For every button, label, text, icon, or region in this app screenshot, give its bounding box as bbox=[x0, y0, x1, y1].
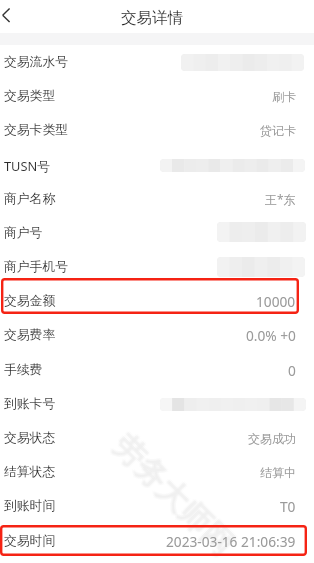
button[interactable]: 商户号 bbox=[0, 216, 314, 250]
staticText: 0.0% +0 bbox=[246, 326, 296, 345]
staticText: 刷卡 bbox=[272, 89, 296, 104]
button[interactable]: 交易类型 bbox=[0, 79, 314, 113]
staticText: 交易类型 bbox=[4, 88, 56, 104]
staticText: 交易状态 bbox=[4, 430, 56, 446]
staticText: 手续费 bbox=[4, 362, 43, 378]
button[interactable]: 结算状态 bbox=[0, 455, 314, 489]
button[interactable]: TUSN号 bbox=[0, 148, 314, 182]
staticText: 劳务大师网 bbox=[105, 427, 242, 563]
staticText: 交易费率 bbox=[4, 327, 56, 343]
staticText: 商户手机号 bbox=[4, 259, 68, 275]
staticText: 交易时间 bbox=[4, 533, 56, 549]
staticText: 结算中 bbox=[260, 465, 296, 480]
staticText: 交易详情 bbox=[121, 8, 184, 28]
staticText: 王*东 bbox=[265, 191, 296, 207]
button[interactable]: 商户手机号 bbox=[0, 250, 314, 284]
staticText: 交易成功 bbox=[248, 431, 296, 446]
button[interactable]: 交易卡类型 bbox=[0, 113, 314, 147]
button[interactable]: 到账卡号 bbox=[0, 387, 314, 421]
staticText: T0 bbox=[280, 497, 296, 516]
staticText: 交易金额 bbox=[4, 293, 56, 309]
staticText: 商户名称 bbox=[4, 191, 56, 207]
button[interactable]: 手续费 bbox=[0, 353, 314, 387]
staticText: 0 bbox=[288, 361, 296, 380]
button[interactable]: 交易金额 bbox=[0, 284, 314, 318]
button[interactable]: 交易费率 bbox=[0, 318, 314, 352]
button[interactable]: 交易状态 bbox=[0, 421, 314, 455]
staticText: 劳务大师网 bbox=[106, 426, 243, 563]
button[interactable]: 商户名称 bbox=[0, 182, 314, 216]
button[interactable]: Back bbox=[0, 0, 30, 30]
staticText: 劳务大师网 bbox=[106, 428, 243, 563]
staticText: 到账时间 bbox=[4, 498, 56, 514]
staticText: 劳务大师网 bbox=[104, 428, 241, 563]
staticText: 交易卡类型 bbox=[4, 122, 68, 138]
button[interactable]: 交易流水号 bbox=[0, 45, 314, 79]
button[interactable]: 交易时间 bbox=[0, 524, 314, 558]
staticText: 到账卡号 bbox=[4, 396, 56, 412]
staticText: 10000 bbox=[256, 292, 296, 311]
staticText: 商户号 bbox=[4, 225, 43, 241]
staticText: TUSN号 bbox=[4, 157, 51, 174]
staticText: 交易流水号 bbox=[4, 54, 68, 70]
staticText: 贷记卡 bbox=[260, 123, 296, 138]
staticText: 2023-03-16 21:06:39 bbox=[166, 532, 296, 551]
staticText: 劳务大师网 bbox=[104, 426, 241, 563]
staticText: 结算状态 bbox=[4, 464, 56, 480]
button[interactable]: 到账时间 bbox=[0, 489, 314, 523]
